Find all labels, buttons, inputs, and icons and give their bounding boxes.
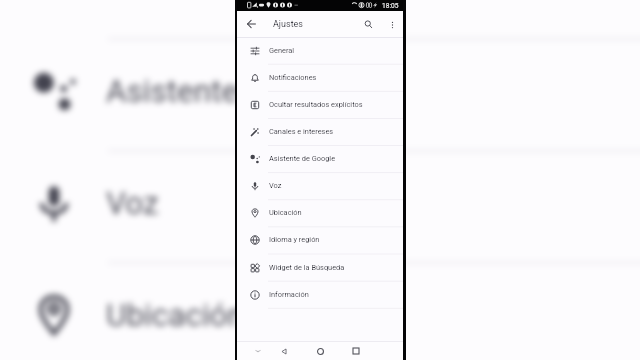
button[interactable]: Notificaciones — [237, 64, 403, 91]
button[interactable]: Widget de la Búsqueda — [237, 254, 403, 281]
button[interactable]: Idioma y región — [237, 226, 403, 253]
button[interactable]: Canales e intereses — [237, 118, 403, 145]
staticText: Voz — [269, 181, 282, 190]
staticText: Canales e intereses — [269, 127, 334, 136]
button[interactable]: Voz — [237, 172, 403, 199]
staticText: Ocultar resultados explícitos — [269, 100, 363, 109]
staticText: Asistente de Google — [106, 73, 388, 110]
button[interactable]: Asistente de Google — [237, 145, 403, 172]
staticText: Idioma y región — [269, 235, 320, 244]
staticText: Voz — [106, 185, 159, 222]
button[interactable]: General — [237, 37, 403, 64]
staticText: Ubicación — [269, 208, 302, 217]
button[interactable]: Ocultar resultados explícitos — [237, 91, 403, 118]
button[interactable]: Home — [312, 343, 328, 359]
button[interactable]: Back — [240, 13, 262, 35]
button[interactable]: Hide navigation bar — [250, 343, 266, 359]
staticText: Widget de la Búsqueda — [269, 263, 345, 272]
button[interactable]: Search — [358, 14, 379, 35]
staticText: Ajustes — [273, 19, 303, 30]
staticText: Ubicación — [106, 297, 245, 334]
staticText: Asistente de Google — [269, 154, 336, 163]
button[interactable]: More options — [382, 14, 403, 35]
button[interactable]: Información — [237, 281, 403, 308]
staticText: Notificaciones — [269, 73, 317, 82]
button[interactable]: Back — [276, 343, 292, 359]
staticText: General — [269, 46, 295, 55]
staticText: 18:05 — [382, 2, 399, 10]
staticText: Información — [269, 290, 309, 299]
button[interactable]: Recent apps — [348, 343, 364, 359]
button[interactable]: Ubicación — [237, 199, 403, 226]
